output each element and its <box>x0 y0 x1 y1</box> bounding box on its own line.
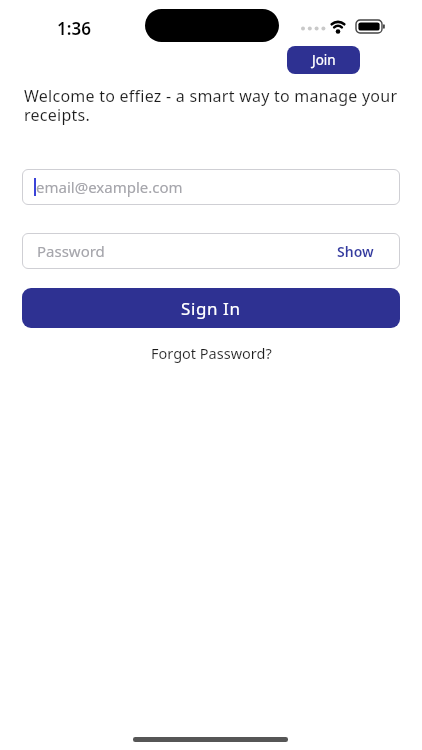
button[interactable]: Password <box>22 233 400 269</box>
staticText: Join <box>312 51 336 69</box>
staticText: 1:36 <box>57 17 91 40</box>
button[interactable]: Sign In <box>22 288 400 328</box>
staticText: Show <box>337 242 374 261</box>
button[interactable]: Join <box>287 46 360 74</box>
button[interactable]: email@example.com <box>22 169 400 205</box>
staticText: Sign In <box>181 297 241 320</box>
staticText: Welcome to effiez - a smart way to manag… <box>24 85 414 126</box>
staticText: Password <box>37 241 105 261</box>
staticText: email@example.com <box>36 177 183 197</box>
staticText: Forgot Password? <box>151 343 272 363</box>
button[interactable]: Forgot Password? <box>0 343 422 363</box>
button[interactable]: Show <box>337 242 374 261</box>
